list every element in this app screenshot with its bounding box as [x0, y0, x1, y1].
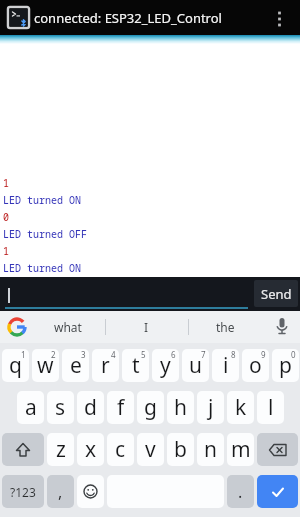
staticText: LED turned ON — [3, 193, 81, 207]
staticText: t — [132, 351, 140, 380]
staticText: LED turned ON — [3, 261, 81, 275]
staticText: z — [56, 435, 66, 464]
button[interactable]: c — [107, 433, 134, 466]
button[interactable]: i — [212, 349, 239, 382]
staticText: LED turned OFF — [3, 227, 87, 241]
staticText: the — [216, 319, 235, 335]
staticText: 3 — [81, 349, 86, 360]
button[interactable]: a — [17, 391, 44, 424]
staticText: 1 — [3, 244, 9, 258]
button[interactable]: h — [167, 391, 194, 424]
button[interactable]: j — [197, 391, 224, 424]
button[interactable] — [77, 475, 104, 508]
button[interactable]: x — [77, 433, 104, 466]
staticText: d — [84, 393, 97, 422]
button[interactable]: k — [227, 391, 254, 424]
button[interactable]: ?123 — [2, 475, 44, 508]
button[interactable]: I — [105, 311, 188, 343]
button[interactable]: q — [2, 349, 29, 382]
button[interactable] — [257, 475, 298, 508]
staticText: 0 — [3, 210, 9, 224]
staticText: b — [174, 435, 187, 464]
staticText: s — [55, 393, 66, 422]
staticText: u — [189, 351, 202, 380]
staticText: e — [70, 351, 82, 380]
button[interactable]: e — [62, 349, 89, 382]
staticText: 0 — [291, 349, 296, 360]
staticText: 4 — [111, 349, 116, 360]
button[interactable]: Send — [254, 280, 298, 307]
staticText: a — [25, 393, 37, 422]
staticText: , — [58, 481, 63, 503]
staticText: what — [54, 319, 82, 335]
button[interactable]: d — [77, 391, 104, 424]
staticText: p — [279, 351, 292, 380]
button[interactable]: z — [47, 433, 74, 466]
staticText: 2 — [51, 349, 56, 360]
staticText: g — [144, 393, 157, 422]
staticText: k — [235, 393, 247, 422]
button[interactable]: r — [92, 349, 119, 382]
staticText: v — [145, 435, 156, 464]
staticText: x — [85, 435, 97, 464]
button[interactable] — [2, 433, 44, 466]
staticText: 5 — [141, 349, 146, 360]
staticText: 6 — [171, 349, 176, 360]
staticText: c — [115, 435, 126, 464]
staticText: l — [268, 393, 274, 422]
staticText: 8 — [231, 349, 236, 360]
staticText: q — [9, 351, 22, 380]
button[interactable]: u — [182, 349, 209, 382]
button[interactable] — [6, 316, 28, 338]
staticText: h — [174, 393, 187, 422]
staticText: ?123 — [10, 484, 36, 500]
staticText: y — [160, 351, 171, 380]
button[interactable]: p — [272, 349, 299, 382]
button[interactable]: . — [227, 475, 254, 508]
staticText: o — [249, 351, 262, 380]
button[interactable]: l — [257, 391, 284, 424]
staticText: Send — [261, 285, 292, 303]
staticText: connected: ESP32_LED_Control — [34, 9, 222, 27]
button[interactable]: g — [137, 391, 164, 424]
button[interactable]: v — [137, 433, 164, 466]
button[interactable] — [257, 433, 298, 466]
button[interactable]: , — [47, 475, 74, 508]
button[interactable]: s — [47, 391, 74, 424]
button[interactable]: what — [30, 311, 105, 343]
staticText: I — [144, 319, 149, 335]
button[interactable]: b — [167, 433, 194, 466]
staticText: j — [208, 393, 214, 422]
button[interactable]: y — [152, 349, 179, 382]
staticText: . — [238, 481, 243, 503]
staticText: 7 — [201, 349, 206, 360]
button[interactable] — [268, 0, 292, 35]
staticText: 9 — [261, 349, 266, 360]
button[interactable]: m — [227, 433, 254, 466]
staticText: r — [101, 351, 110, 380]
button[interactable]: n — [197, 433, 224, 466]
staticText: 1 — [3, 176, 9, 190]
button[interactable] — [270, 315, 294, 339]
button[interactable]: f — [107, 391, 134, 424]
staticText: m — [231, 435, 251, 464]
button[interactable]: w — [32, 349, 59, 382]
staticText: n — [204, 435, 217, 464]
staticText: 1 — [21, 349, 26, 360]
button[interactable]: o — [242, 349, 269, 382]
staticText: w — [37, 351, 54, 380]
button[interactable]: t — [122, 349, 149, 382]
button[interactable]: the — [188, 311, 262, 343]
staticText: i — [223, 351, 229, 380]
staticText: f — [117, 393, 125, 422]
